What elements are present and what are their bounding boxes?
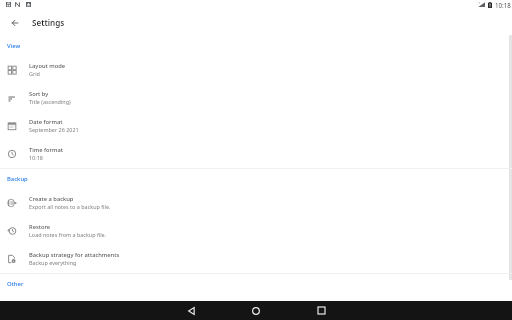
- staticText: Time format: [29, 146, 63, 154]
- staticText: Backup: [7, 175, 28, 183]
- button[interactable]: Home: [234, 301, 278, 320]
- button[interactable]: Navigate up: [6, 14, 23, 31]
- button[interactable]: Time format: [0, 140, 512, 168]
- staticText: Backup everything: [29, 259, 77, 266]
- button[interactable]: Recent apps: [299, 301, 343, 320]
- staticText: 10:18: [29, 154, 43, 161]
- staticText: Title (ascending): [29, 98, 71, 105]
- staticText: September 26 2021: [29, 126, 79, 133]
- staticText: Date format: [29, 118, 63, 126]
- staticText: Layout mode: [29, 62, 66, 70]
- staticText: Restore: [29, 223, 51, 231]
- staticText: Backup strategy for attachments: [29, 251, 120, 259]
- button[interactable]: Layout mode: [0, 56, 512, 84]
- staticText: Create a backup: [29, 195, 74, 203]
- button[interactable]: Date format: [0, 112, 512, 140]
- staticText: 10:18: [495, 1, 511, 9]
- button[interactable]: Restore: [0, 217, 512, 245]
- button[interactable]: Create a backup: [0, 189, 512, 217]
- staticText: Sort by: [29, 90, 49, 98]
- staticText: Settings: [32, 17, 65, 28]
- staticText: View: [7, 42, 21, 50]
- staticText: Other: [7, 280, 24, 288]
- staticText: Load notes from a backup file.: [29, 231, 107, 238]
- button[interactable]: Sort by: [0, 84, 512, 112]
- button[interactable]: Backup strategy for attachments: [0, 245, 512, 273]
- staticText: Export all notes to a backup file.: [29, 203, 111, 210]
- button[interactable]: Back: [169, 301, 213, 320]
- staticText: Grid: [29, 70, 40, 77]
